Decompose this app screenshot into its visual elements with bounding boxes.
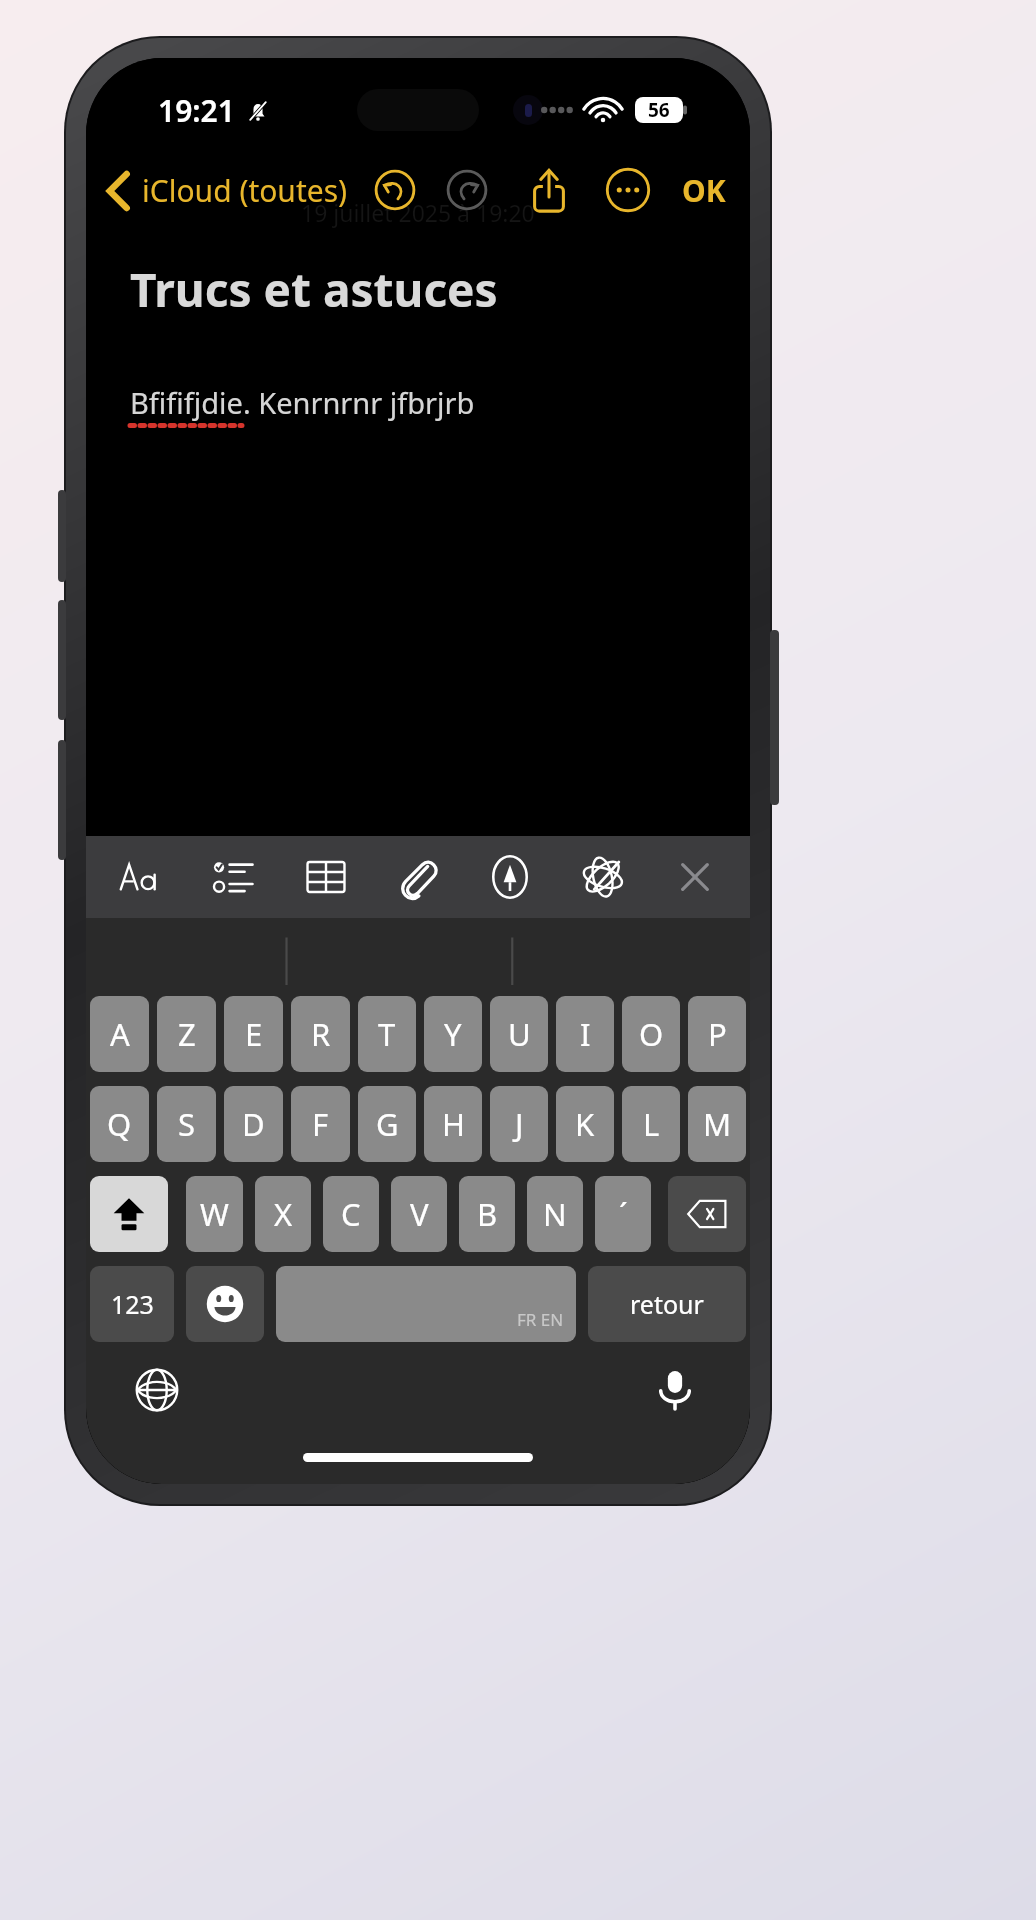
button[interactable]: Supprimer — [668, 1176, 746, 1252]
button[interactable]: OK — [676, 162, 732, 219]
button[interactable]: I — [556, 996, 614, 1072]
staticText: U — [508, 1013, 531, 1055]
button[interactable]: E — [224, 996, 283, 1072]
button[interactable]: L — [622, 1086, 680, 1162]
staticText: G — [376, 1103, 399, 1145]
staticText: iCloud (toutes) — [142, 170, 348, 211]
staticText: retour — [630, 1287, 704, 1321]
staticText: C — [341, 1193, 361, 1235]
staticText: 19 juillet 2025 à 19:20 — [301, 197, 535, 228]
staticText: J — [515, 1103, 524, 1145]
button[interactable]: J — [490, 1086, 548, 1162]
button[interactable]: H — [424, 1086, 482, 1162]
button[interactable]: O — [622, 996, 680, 1072]
button[interactable]: Changer de clavier — [128, 1361, 186, 1419]
button[interactable]: Q — [90, 1086, 149, 1162]
button[interactable]: Plus d'options — [602, 164, 654, 216]
staticText: P — [708, 1013, 727, 1055]
button[interactable]: Liste de contrôle — [197, 839, 271, 915]
button[interactable]: V — [391, 1176, 447, 1252]
button[interactable]: Balisage — [566, 839, 640, 915]
button[interactable]: 123 — [90, 1266, 174, 1342]
staticText: Y — [444, 1013, 462, 1055]
button[interactable]: S — [157, 1086, 216, 1162]
staticText: X — [274, 1193, 293, 1235]
staticText: W — [200, 1193, 229, 1235]
staticText: V — [410, 1193, 429, 1235]
staticText: B — [477, 1193, 498, 1235]
button[interactable]: G — [358, 1086, 416, 1162]
button[interactable]: N — [527, 1176, 583, 1252]
button[interactable]: Dessin — [473, 839, 547, 915]
staticText: T — [378, 1013, 396, 1055]
staticText: 19:21 — [158, 90, 235, 131]
staticText: L — [643, 1103, 660, 1145]
button[interactable]: Y — [424, 996, 482, 1072]
button[interactable]: Z — [157, 996, 216, 1072]
staticText: OK — [682, 170, 726, 211]
staticText: M — [703, 1103, 732, 1145]
staticText: ´ — [619, 1193, 628, 1235]
staticText: F — [312, 1103, 329, 1145]
staticText: K — [575, 1103, 595, 1145]
staticText: E — [245, 1013, 263, 1055]
button[interactable]: ´ — [595, 1176, 651, 1252]
staticText: Trucs et astuces — [130, 258, 498, 321]
staticText: S — [178, 1103, 196, 1145]
staticText: Z — [178, 1013, 196, 1055]
button[interactable]: M — [688, 1086, 746, 1162]
button[interactable]: retour — [588, 1266, 746, 1342]
staticText: O — [639, 1013, 664, 1055]
button[interactable]: F — [291, 1086, 350, 1162]
staticText: Q — [107, 1103, 132, 1145]
staticText: R — [311, 1013, 331, 1055]
button[interactable]: Espace — [276, 1266, 576, 1342]
button[interactable]: W — [186, 1176, 243, 1252]
button[interactable]: Emoji — [186, 1266, 264, 1342]
staticText: I — [580, 1013, 591, 1055]
staticText: A — [110, 1013, 130, 1055]
button[interactable]: Fermer le clavier — [658, 839, 732, 915]
button[interactable]: D — [224, 1086, 283, 1162]
button[interactable]: Joindre un fichier — [381, 839, 455, 915]
button[interactable]: P — [688, 996, 746, 1072]
button[interactable]: Format du texte — [104, 839, 178, 915]
button[interactable]: Majuscule — [90, 1176, 168, 1252]
button[interactable]: iCloud (toutes) — [104, 164, 352, 217]
button[interactable]: Rétablir — [442, 165, 492, 215]
button[interactable]: T — [358, 996, 416, 1072]
staticText: N — [543, 1193, 567, 1235]
button[interactable]: U — [490, 996, 548, 1072]
button[interactable]: B — [459, 1176, 515, 1252]
button[interactable]: X — [255, 1176, 311, 1252]
staticText: 123 — [111, 1287, 154, 1321]
staticText: H — [442, 1103, 465, 1145]
staticText: D — [242, 1103, 265, 1145]
staticText: Bfififjdie. Kenrnrnr jfbrjrb — [130, 383, 475, 422]
button[interactable]: K — [556, 1086, 614, 1162]
staticText: 56 — [648, 97, 670, 123]
button[interactable]: Annuler — [370, 165, 420, 215]
button[interactable]: Dictée — [646, 1361, 704, 1419]
button[interactable]: C — [323, 1176, 379, 1252]
button[interactable]: Partager — [522, 163, 576, 217]
button[interactable]: Tableau — [289, 839, 363, 915]
button[interactable]: R — [291, 996, 350, 1072]
staticText: FR EN — [517, 1308, 564, 1331]
button[interactable]: A — [90, 996, 149, 1072]
